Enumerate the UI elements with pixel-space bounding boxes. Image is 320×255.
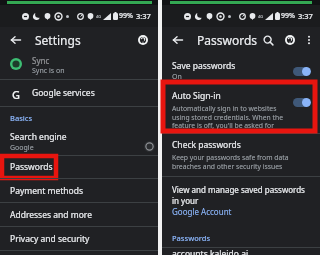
button[interactable]: Help	[283, 33, 297, 47]
button[interactable]: Save passwords	[162, 58, 320, 84]
staticText: Passwords	[197, 32, 258, 48]
staticText: Payment methods	[10, 185, 84, 197]
button[interactable]: Toggle	[293, 98, 311, 107]
staticText: Sync	[32, 55, 50, 66]
button[interactable]: Auto Sign-in	[162, 87, 320, 133]
button[interactable]: Passwords	[162, 229, 320, 247]
staticText: Privacy and security	[10, 233, 90, 245]
staticText: Sync is on	[32, 66, 65, 76]
staticText: G	[12, 87, 20, 99]
staticText: Google	[10, 143, 34, 153]
staticText: 3:37	[136, 11, 151, 21]
staticText: Addresses and more	[10, 209, 92, 221]
button[interactable]: accounts.kaleido.ai	[162, 248, 320, 255]
staticText: Basics	[10, 113, 33, 123]
button[interactable]: Back	[170, 32, 186, 48]
staticText: Check passwords	[172, 139, 241, 151]
staticText: 4G	[258, 14, 264, 19]
staticText: 4G	[96, 14, 102, 19]
button[interactable]: More options	[303, 34, 315, 46]
button[interactable]: G	[0, 80, 158, 106]
staticText: 99%	[281, 11, 295, 21]
button[interactable]: Search	[261, 33, 275, 47]
button[interactable]: Toggle	[293, 67, 311, 76]
staticText: 99%	[119, 11, 133, 21]
button[interactable]: Help	[136, 33, 150, 47]
staticText: Google Account	[172, 206, 232, 217]
staticText: Passwords	[10, 161, 53, 173]
button[interactable]: View and manage saved passwords in your	[162, 177, 320, 223]
staticText: accounts.kaleido.ai	[172, 248, 249, 255]
button[interactable]: Addresses and more	[0, 203, 158, 226]
button[interactable]: Payment methods	[0, 179, 158, 202]
staticText: Settings	[35, 32, 81, 48]
button[interactable]: Passwords	[0, 156, 158, 178]
staticText: View and manage saved passwords in your	[172, 184, 311, 206]
staticText: Save passwords	[172, 60, 236, 72]
button[interactable]: Sync	[0, 53, 158, 75]
staticText: Keep your passwords safe from data breac…	[172, 153, 311, 171]
button[interactable]: Check passwords	[162, 134, 320, 176]
staticText: Automatically sign in to websites using …	[172, 104, 289, 133]
staticText: Google services	[32, 87, 95, 99]
staticText: Auto Sign-in	[172, 90, 221, 102]
staticText: On	[172, 72, 182, 82]
button[interactable]: Search engine	[0, 129, 158, 155]
button[interactable]: Privacy and security	[0, 227, 158, 250]
staticText: Passwords	[172, 233, 211, 243]
button[interactable]: Back	[8, 32, 24, 48]
staticText: 3:37	[298, 11, 313, 21]
staticText: Search engine	[10, 131, 67, 143]
